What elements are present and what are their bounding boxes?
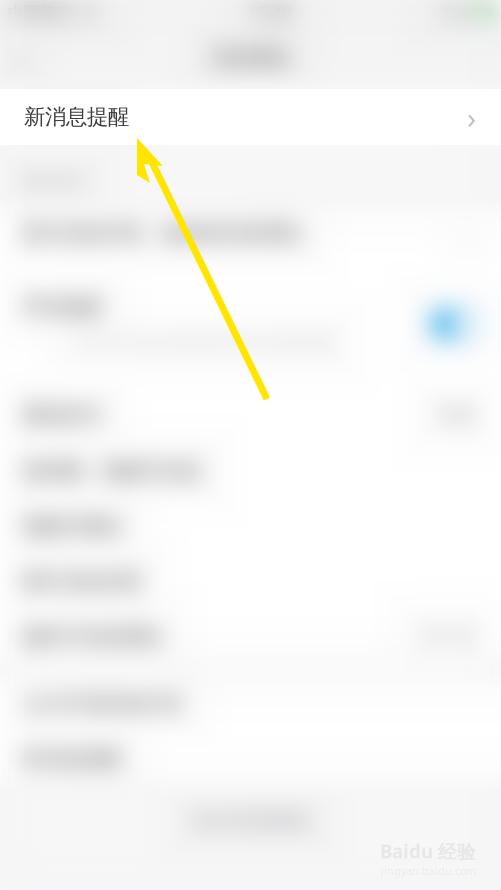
staticText: ›: [467, 97, 476, 136]
button[interactable]: 新消息提醒: [0, 89, 501, 145]
staticText: 新消息提醒: [24, 104, 129, 130]
staticText: 15:48: [247, 1, 292, 24]
staticText: 群消息提醒: [22, 746, 122, 771]
staticText: 声音提醒: [22, 295, 102, 319]
staticText: 新消息提醒: [22, 105, 122, 129]
staticText: 服务号消息通知: [22, 624, 162, 649]
staticText: Baidu 经验: [380, 839, 476, 864]
staticText: jingyan.baidu.com: [381, 864, 476, 878]
staticText: ›: [470, 101, 477, 133]
staticText: 显示消息详情、接收新消息通知: [22, 221, 302, 245]
staticText: 通知样式: [22, 403, 102, 427]
staticText: 消息通知: [210, 45, 290, 70]
staticText: 聊天消息设置: [22, 569, 142, 594]
staticText: 朋友圈、视频号消息: [22, 459, 202, 483]
staticText: 86%: [441, 3, 469, 23]
staticText: 中国移动: [8, 3, 72, 23]
staticText: 视频号通知: [22, 514, 122, 539]
staticText: 公众号消息免打扰: [22, 691, 182, 716]
staticText: 开启后可在锁定屏幕上看到消息摘要: [22, 333, 333, 353]
